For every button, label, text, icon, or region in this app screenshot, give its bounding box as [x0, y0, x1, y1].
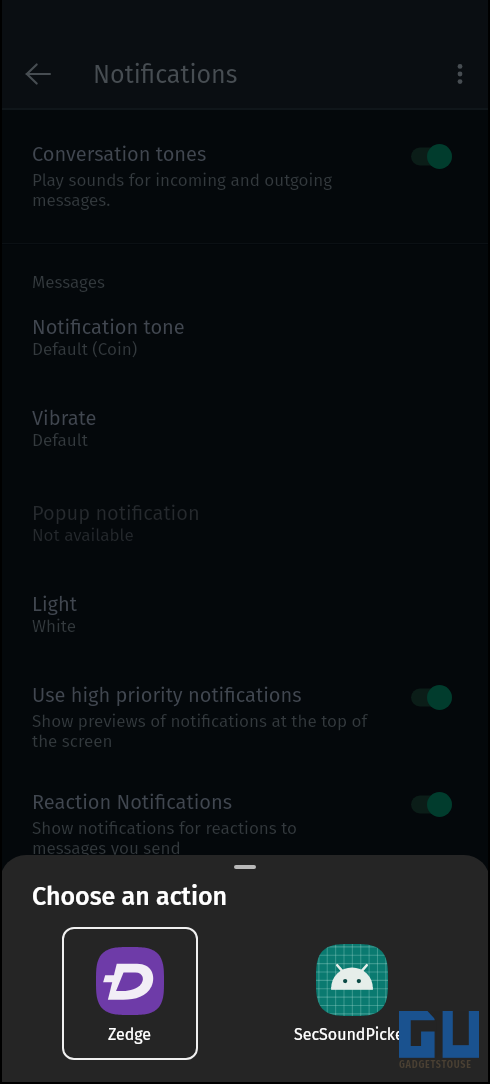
staticText: Show previews of notifications at the to…: [32, 711, 368, 731]
staticText: GADGETSTOUSE: [399, 1059, 472, 1071]
staticText: Light: [32, 592, 77, 616]
staticText: Default: [32, 430, 88, 450]
button[interactable]: Back: [16, 52, 60, 96]
staticText: Use high priority notifications: [32, 683, 302, 707]
button[interactable]: Light: [0, 582, 490, 648]
staticText: Play sounds for incoming and outgoing: [32, 170, 333, 190]
staticText: Choose an action: [32, 882, 228, 912]
staticText: Conversation tones: [32, 142, 207, 166]
staticText: Not available: [32, 525, 134, 545]
button[interactable]: Toggle: [411, 792, 452, 817]
button[interactable]: Reaction Notifications: [0, 780, 490, 870]
button[interactable]: More options: [438, 52, 482, 96]
staticText: Show notifications for reactions to: [32, 818, 298, 838]
staticText: Popup notification: [32, 501, 200, 525]
staticText: Reaction Notifications: [32, 790, 233, 814]
button[interactable]: Toggle: [411, 144, 452, 169]
button[interactable]: Vibrate: [0, 396, 490, 462]
staticText: Zedge: [108, 1025, 152, 1044]
staticText: Default (Coin): [32, 339, 138, 359]
staticText: Notification tone: [32, 315, 185, 339]
staticText: messages.: [32, 190, 111, 210]
button[interactable]: Popup notification: [0, 491, 490, 557]
staticText: SecSoundPicker: [294, 1025, 410, 1044]
staticText: Messages: [32, 272, 105, 292]
button[interactable]: Toggle: [411, 685, 452, 710]
button[interactable]: Use high priority notifications: [0, 673, 490, 763]
staticText: the screen: [32, 731, 113, 751]
button[interactable]: Notification tone: [0, 305, 490, 371]
button[interactable]: SecSoundPicker: [284, 927, 420, 1060]
button[interactable]: Zedge: [62, 927, 198, 1060]
staticText: Notifications: [93, 60, 238, 90]
staticText: Vibrate: [32, 406, 97, 430]
staticText: White: [32, 616, 76, 636]
staticText: messages you send: [32, 838, 181, 858]
button[interactable]: Conversation tones: [0, 132, 490, 222]
